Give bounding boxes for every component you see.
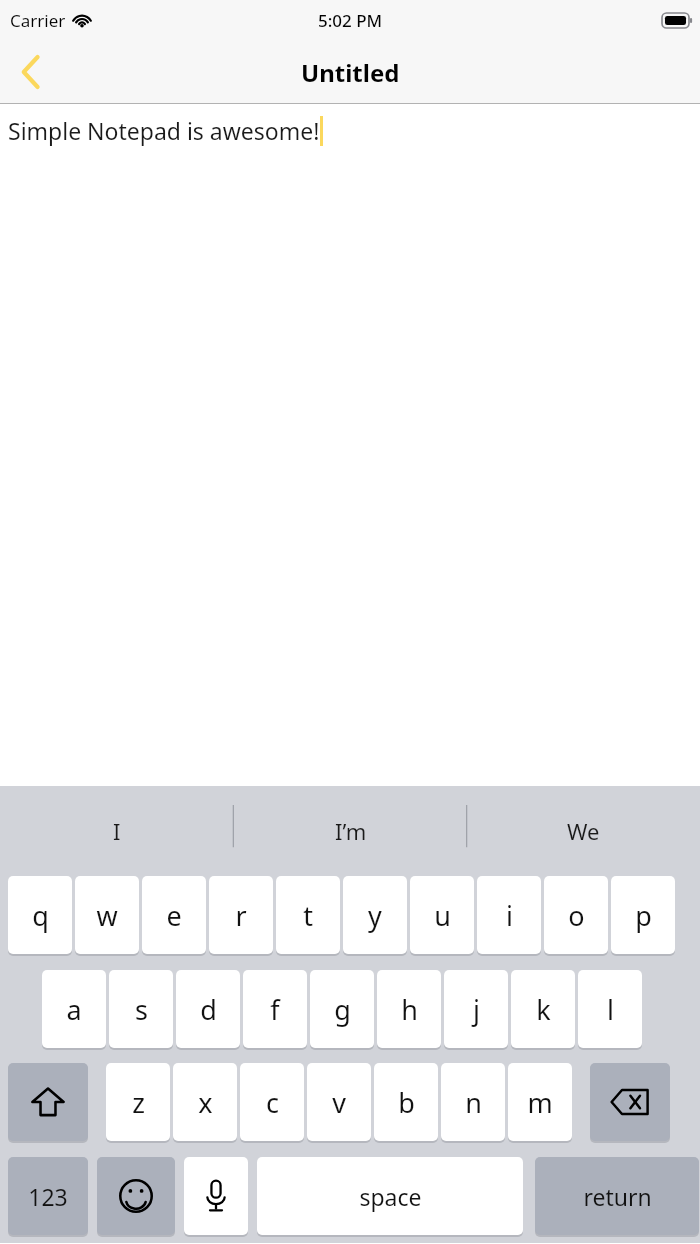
button[interactable]: o [544,876,608,955]
staticText: w [96,897,118,934]
button[interactable]: e [142,876,206,955]
staticText: Simple Notepad is awesome! [8,115,320,146]
staticText: j [473,991,480,1028]
button[interactable]: c [240,1063,304,1142]
staticText: l [607,991,614,1028]
staticText: return [583,1181,652,1212]
staticText: 5:02 PM [318,9,383,32]
staticText: I’m [335,816,367,846]
staticText: m [527,1084,553,1121]
button[interactable]: z [106,1063,170,1142]
button[interactable]: u [410,876,474,955]
button[interactable]: v [307,1063,371,1142]
button[interactable]: x [173,1063,237,1142]
button[interactable]: l [578,970,642,1049]
button[interactable]: w [75,876,139,955]
button[interactable]: p [611,876,675,955]
button[interactable]: a [42,970,106,1049]
button[interactable]: d [176,970,240,1049]
staticText: o [568,897,585,934]
staticText: c [266,1084,279,1121]
staticText: e [166,897,182,934]
button[interactable]: Dictate [184,1157,248,1236]
button[interactable]: I [0,786,234,876]
staticText: Carrier [10,9,66,32]
staticText: x [198,1084,213,1121]
button[interactable]: n [441,1063,505,1142]
button[interactable]: return [535,1157,699,1236]
staticText: n [465,1084,482,1121]
button[interactable]: g [310,970,374,1049]
button[interactable]: Backspace [590,1063,670,1142]
button[interactable]: Shift [8,1063,88,1142]
button[interactable]: b [374,1063,438,1142]
button[interactable]: q [8,876,72,955]
staticText: f [270,991,280,1028]
button[interactable]: Simple Notepad is awesome! [0,104,700,786]
staticText: i [506,897,513,934]
button[interactable]: m [508,1063,572,1142]
staticText: b [398,1084,415,1121]
staticText: d [200,991,217,1028]
button[interactable]: s [109,970,173,1049]
staticText: y [368,897,382,934]
staticText: t [303,897,313,934]
staticText: We [567,816,600,846]
button[interactable]: Emoji [97,1157,175,1236]
staticText: k [536,991,551,1028]
button[interactable]: k [511,970,575,1049]
button[interactable]: f [243,970,307,1049]
staticText: g [334,991,351,1028]
staticText: space [359,1181,422,1212]
staticText: u [434,897,451,934]
staticText: 123 [28,1181,68,1212]
staticText: r [235,897,247,934]
button[interactable]: y [343,876,407,955]
button[interactable]: r [209,876,273,955]
button[interactable]: 123 [8,1157,88,1236]
staticText: q [32,897,49,934]
staticText: v [332,1084,346,1121]
staticText: a [66,991,82,1028]
button[interactable]: space [257,1157,523,1236]
staticText: s [135,991,148,1028]
button[interactable]: i [477,876,541,955]
staticText: p [635,897,652,934]
staticText: z [132,1084,145,1121]
button[interactable]: h [377,970,441,1049]
button[interactable]: We [467,786,700,876]
button[interactable]: Back [0,40,62,104]
staticText: I [113,816,121,846]
button[interactable]: j [444,970,508,1049]
staticText: Untitled [301,56,400,89]
button[interactable]: I’m [234,786,467,876]
staticText: h [401,991,418,1028]
button[interactable]: t [276,876,340,955]
